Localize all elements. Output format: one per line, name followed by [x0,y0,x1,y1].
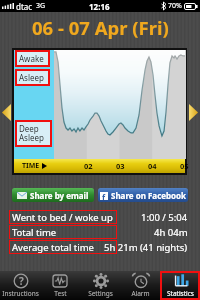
button[interactable]: f [98,188,188,202]
staticText: Test [54,289,67,298]
staticText: 3G [36,1,46,11]
staticText: Statistics [167,289,194,298]
button[interactable]: Alarm [120,271,160,300]
staticText: 70% [168,1,182,11]
staticText: Total time [12,226,57,239]
staticText: ? [19,274,24,288]
staticText: Share by email [30,190,89,201]
staticText: Awake [19,53,44,64]
button[interactable]: Next day [187,97,200,127]
staticText: 06 - 07 Apr (Fri) [32,15,169,40]
button[interactable]: 4h 04m [0,225,188,239]
staticText: Alarm [131,289,150,298]
staticText: 03 [116,161,125,171]
staticText: Share on Facebook [111,190,187,201]
staticText: Instructions [2,289,39,298]
button[interactable]: Share by email [12,188,94,202]
button[interactable]: Statistics [160,271,200,300]
staticText: Went to bed / woke up [12,211,113,224]
button[interactable]: 5h 21m (41 nights) [0,240,188,254]
staticText: 02 [84,161,93,171]
staticText: Deep Asleep [19,123,44,144]
staticText: TIME [22,161,40,171]
staticText: 4h 04m [154,226,188,239]
staticText: f [102,192,106,200]
staticText: Asleep [19,72,44,83]
staticText: 04 [148,161,157,171]
staticText: dtac [16,1,33,12]
button[interactable]: Settings [80,271,120,300]
staticText: Settings [88,289,113,298]
button[interactable]: 1:00 / 5:04 [0,210,188,224]
staticText: 05 [180,161,189,171]
button[interactable]: TIME [14,159,55,173]
staticText: 1:00 / 5:04 [141,211,188,224]
staticText: 12:16 [89,1,110,12]
button[interactable]: ? [0,271,40,300]
staticText: Average total time [12,241,94,254]
button[interactable]: Previous day [0,97,12,127]
staticText: 5h 21m (41 nights) [104,241,188,254]
button[interactable]: Test [40,271,80,300]
